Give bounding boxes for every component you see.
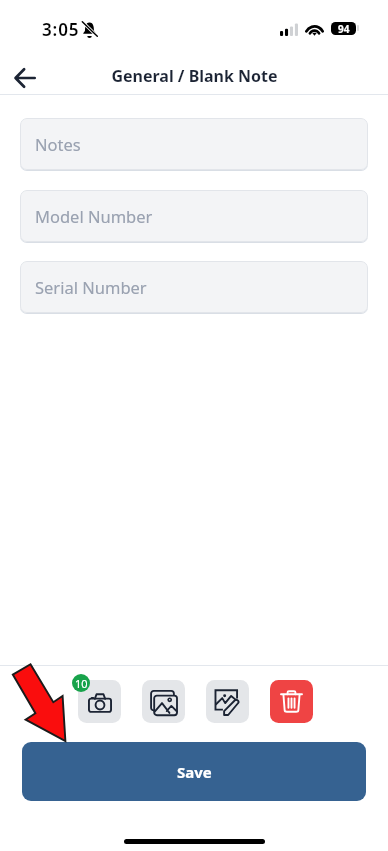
button[interactable]: Model Number <box>20 190 368 242</box>
button[interactable]: Notes <box>20 118 368 170</box>
button[interactable]: Delete <box>270 680 313 723</box>
staticText: 94 <box>338 22 350 35</box>
staticText: 10 <box>75 676 88 691</box>
button[interactable]: Camera <box>78 680 121 723</box>
staticText: Notes <box>35 133 81 155</box>
button[interactable]: Edit photo <box>206 680 249 723</box>
button[interactable]: Back <box>3 56 47 95</box>
staticText: Model Number <box>35 205 153 227</box>
staticText: General / Blank Note <box>111 65 278 87</box>
button[interactable]: Save <box>22 742 366 801</box>
staticText: Serial Number <box>35 276 147 298</box>
button[interactable]: Serial Number <box>20 261 368 313</box>
button[interactable]: Gallery <box>142 680 185 723</box>
staticText: Save <box>177 762 212 782</box>
staticText: 3:05 <box>42 18 80 41</box>
